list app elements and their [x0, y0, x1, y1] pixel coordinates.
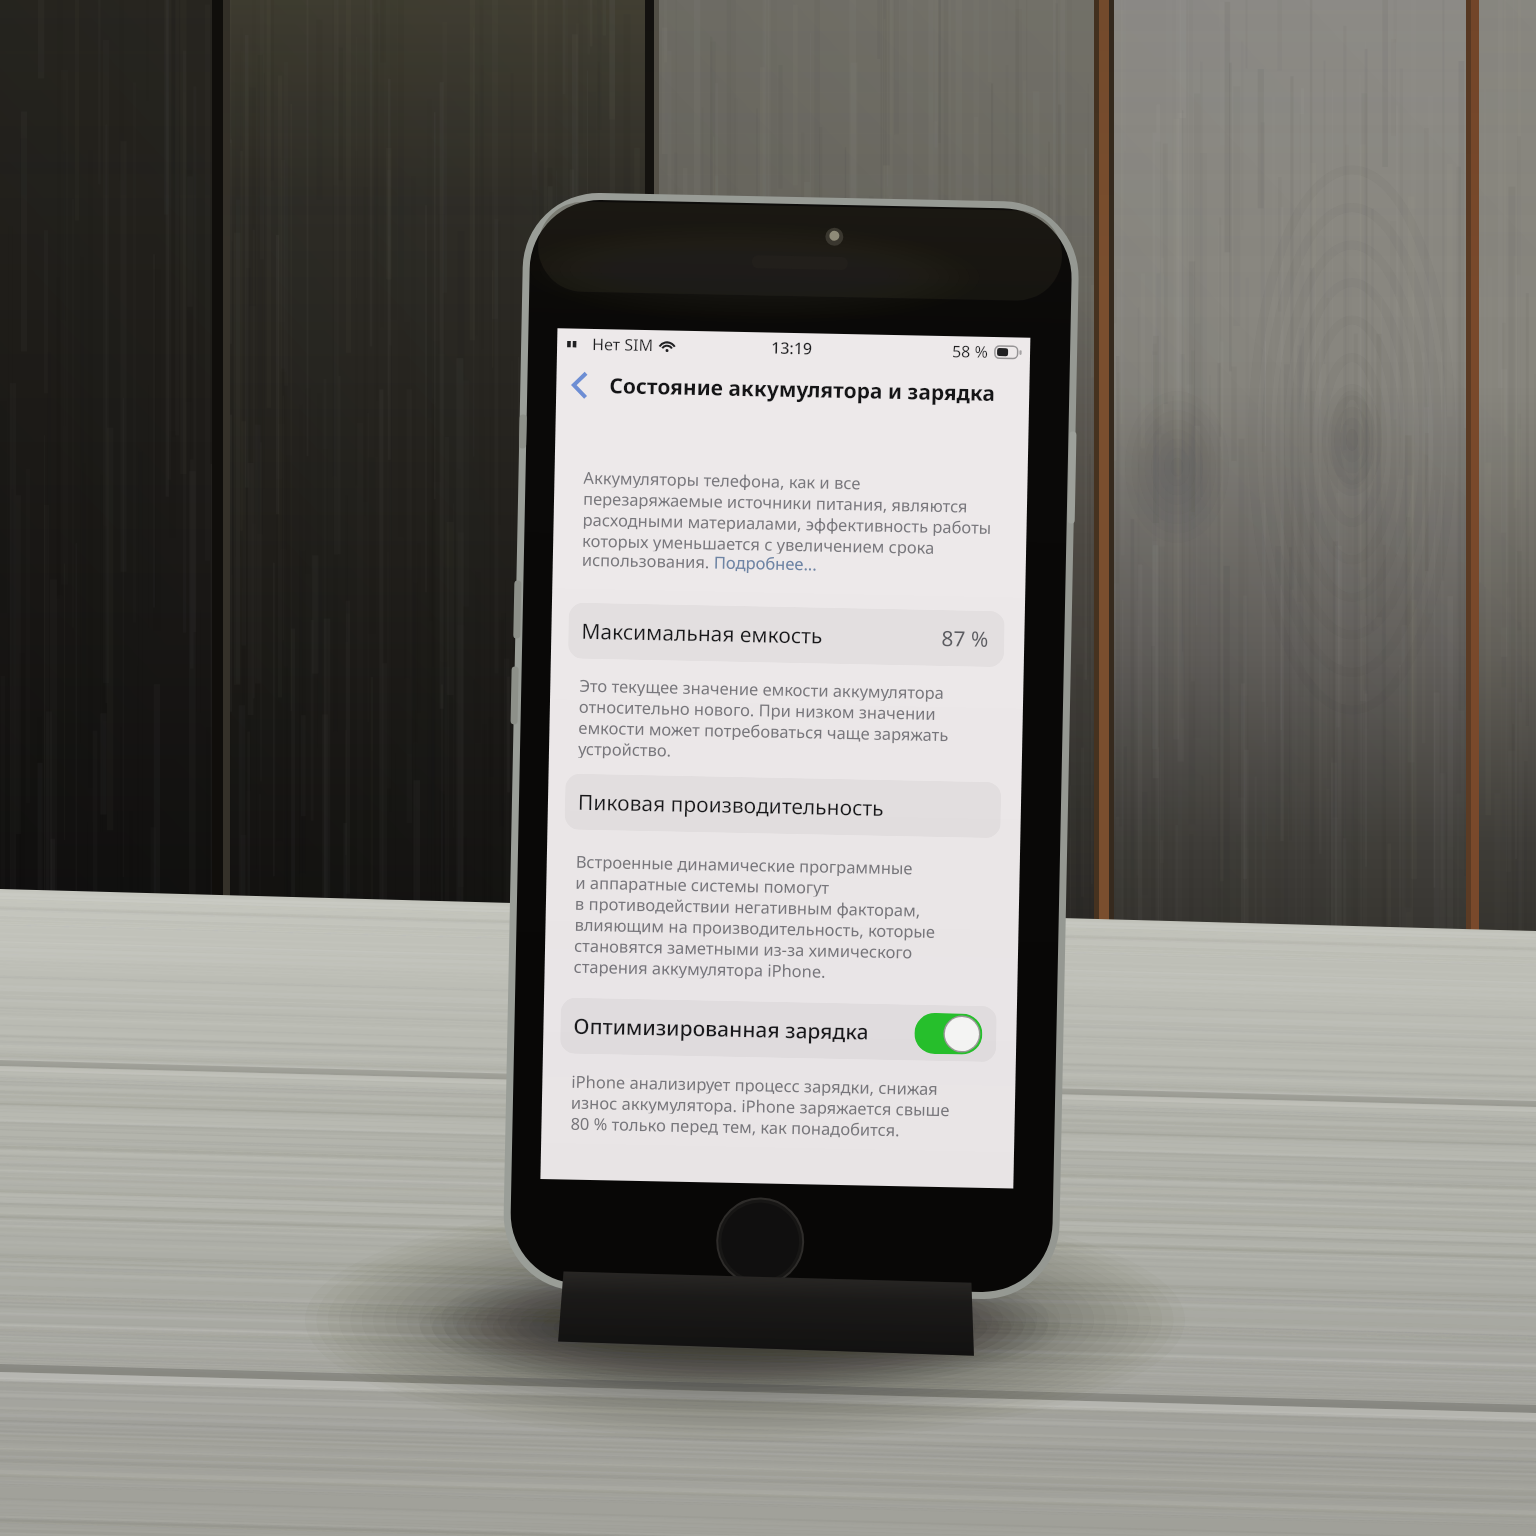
- staticText: расходными материалами, эффективность ра…: [582, 508, 992, 537]
- staticText: Пиковая производительность: [578, 788, 884, 823]
- staticText: Встроенные динамические программные: [576, 850, 913, 877]
- staticText: Оптимизированная зарядка: [573, 1012, 870, 1047]
- staticText: iPhone анализирует процесс зарядки, сниж…: [571, 1070, 938, 1098]
- staticText: перезаряжаемые источники питания, являют…: [583, 487, 968, 515]
- staticText: в противодействии негативным факторам,: [575, 892, 921, 920]
- button[interactable]: Optimised charging: [914, 1012, 983, 1055]
- staticText: Состояние аккумулятора и зарядка: [609, 371, 995, 408]
- button[interactable]: Подробнее...: [714, 550, 818, 574]
- staticText: Это текущее значение емкости аккумулятор…: [579, 674, 944, 702]
- staticText: Аккумуляторы телефона, как и все: [583, 466, 861, 492]
- staticText: Нет SIM: [592, 333, 653, 356]
- staticText: которых уменьшается с увеличением срока: [582, 529, 935, 557]
- staticText: 80 % только перед тем, как понадобится.: [570, 1112, 901, 1139]
- staticText: использования.: [582, 548, 714, 572]
- staticText: 13:19: [771, 336, 812, 359]
- staticText: 58 %: [952, 340, 988, 363]
- button[interactable]: Пиковая производительность: [564, 773, 1001, 838]
- staticText: влияющим на производительность, которые: [574, 913, 936, 941]
- staticText: износ аккумулятора. iPhone заряжается св…: [571, 1091, 950, 1119]
- button[interactable]: Back: [558, 363, 601, 406]
- staticText: емкости может потребоваться чаще заряжат…: [578, 716, 949, 744]
- staticText: Максимальная емкость: [581, 617, 824, 651]
- staticText: становятся заметными из-за химического: [574, 934, 913, 961]
- button[interactable]: Максимальная емкость: [568, 602, 1005, 667]
- staticText: относительно нового. При низком значении: [579, 695, 936, 723]
- staticText: 87 %: [941, 624, 989, 654]
- button[interactable]: Оптимизированная зарядка: [560, 997, 997, 1062]
- staticText: старения аккумулятора iPhone.: [573, 955, 826, 981]
- staticText: устройство.: [578, 737, 672, 760]
- staticText: и аппаратные системы помогут: [575, 871, 830, 897]
